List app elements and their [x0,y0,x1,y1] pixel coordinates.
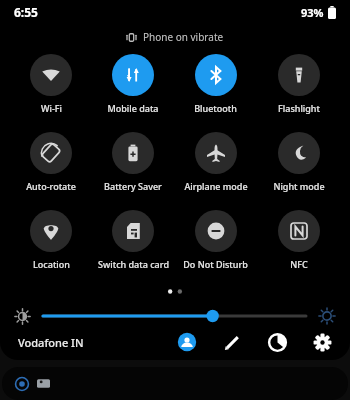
button[interactable]: Night mode [257,132,340,192]
button[interactable]: Notification [15,377,29,391]
button[interactable] [43,306,306,326]
staticText: Battery Saver [104,180,162,192]
staticText: Switch data card [98,258,169,270]
staticText: 93% [301,5,324,20]
staticText: Airplane mode [184,180,248,192]
button[interactable]: Vodafone IN [18,335,84,350]
button[interactable]: Edit [223,333,242,352]
button[interactable]: Flashlight [257,54,340,114]
button[interactable]: Wi-Fi [10,54,92,114]
button[interactable]: Auto brightness [318,307,336,325]
button[interactable]: Location [10,210,92,270]
button[interactable]: NFC [257,210,340,270]
other: Low brightness [14,308,31,325]
staticText: Mobile data [107,102,159,114]
staticText: Location [33,258,70,270]
staticText: Do Not Disturb [183,258,248,270]
button[interactable]: Mobile data [92,54,174,114]
button[interactable]: Screenshot [37,377,50,390]
button[interactable]: Power [268,333,287,352]
staticText: Night mode [273,180,325,192]
button[interactable]: Bluetooth [174,54,257,114]
staticText: NFC [290,258,308,270]
staticText: Wi-Fi [41,102,62,114]
button[interactable]: Do Not Disturb [174,210,257,270]
staticText: Auto-rotate [26,180,76,192]
button[interactable]: Battery Saver [92,132,174,192]
staticText: 6:55 [14,4,38,20]
button[interactable]: Auto-rotate [10,132,92,192]
button[interactable]: User [177,332,197,352]
button[interactable]: Airplane mode [174,132,257,192]
staticText: Bluetooth [194,102,237,114]
staticText: Flashlight [278,102,320,114]
button[interactable]: Switch data card [92,210,174,270]
button[interactable]: Settings [313,333,332,352]
staticText: Phone on vibrate [143,30,224,44]
